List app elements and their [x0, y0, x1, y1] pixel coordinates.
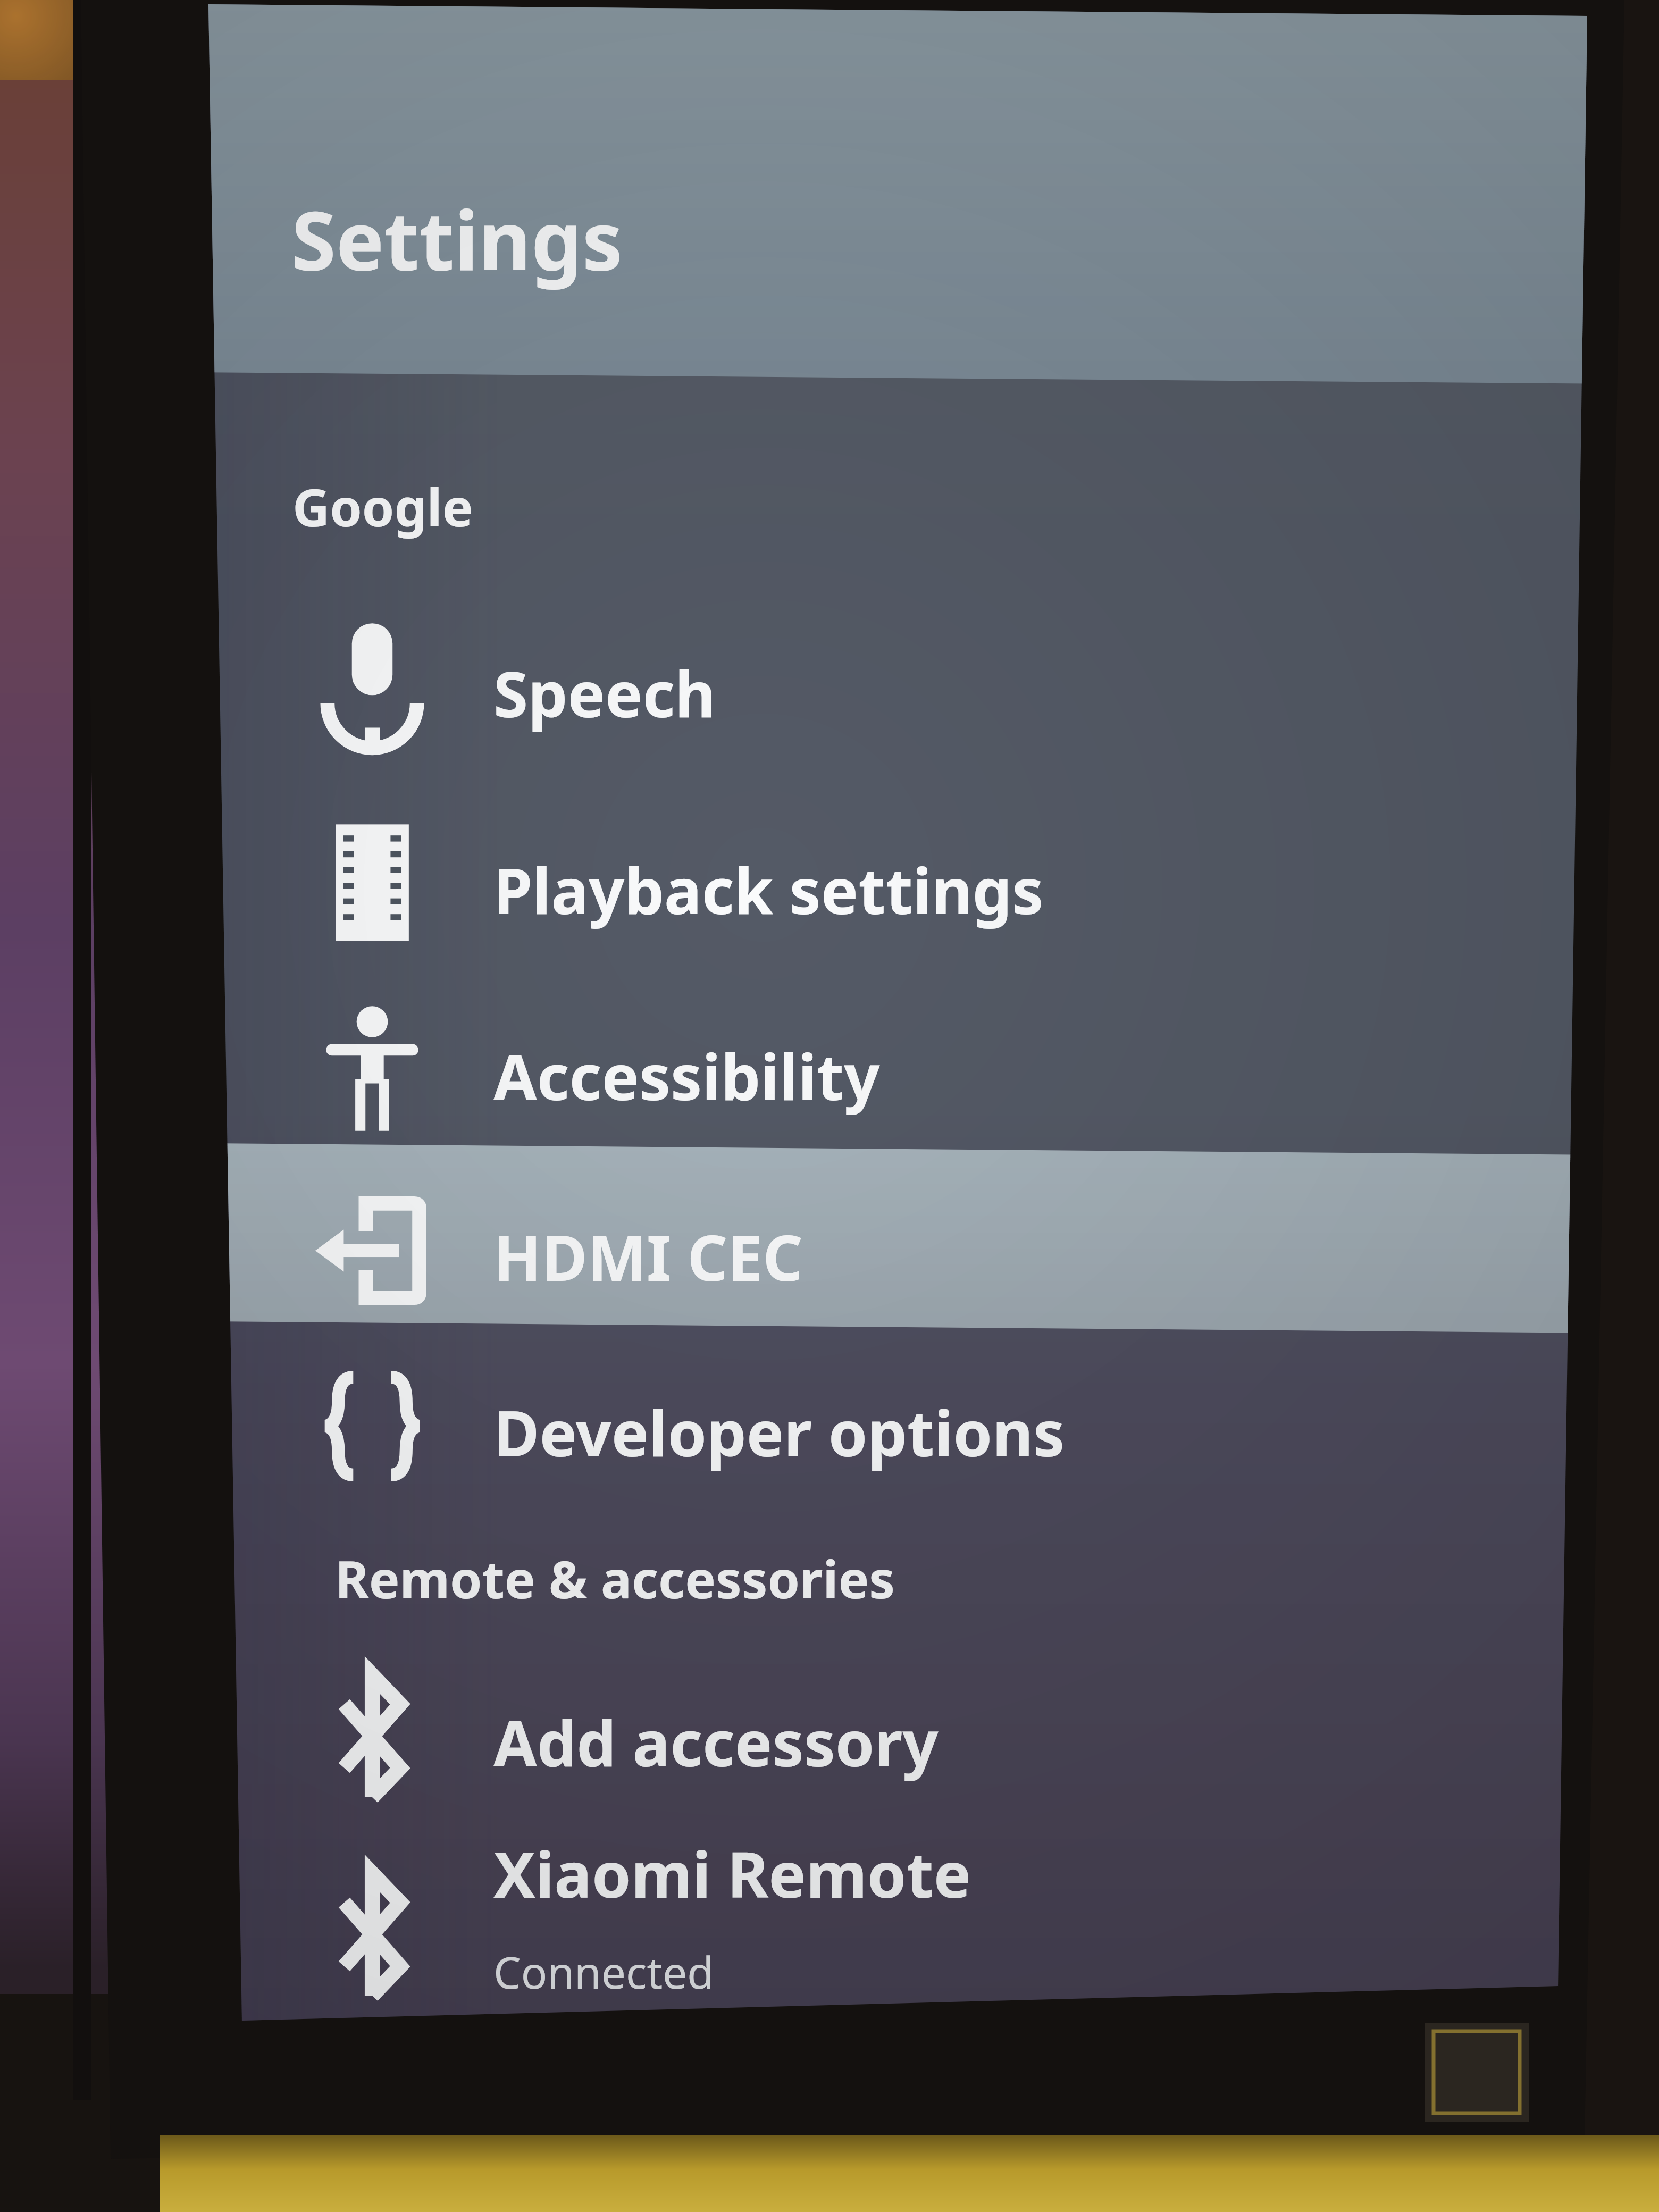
button[interactable]: Add accessory — [236, 1659, 1563, 1829]
button[interactable]: HDMI CEC — [228, 1143, 1571, 1321]
button[interactable]: Developer options — [231, 1340, 1568, 1515]
button[interactable]: Xiaomi Remote, Connected — [239, 1840, 1560, 2015]
button[interactable]: Accessibility — [225, 984, 1573, 1143]
button[interactable]: Speech — [219, 606, 1579, 782]
button[interactable]: Playback settings — [222, 792, 1576, 968]
